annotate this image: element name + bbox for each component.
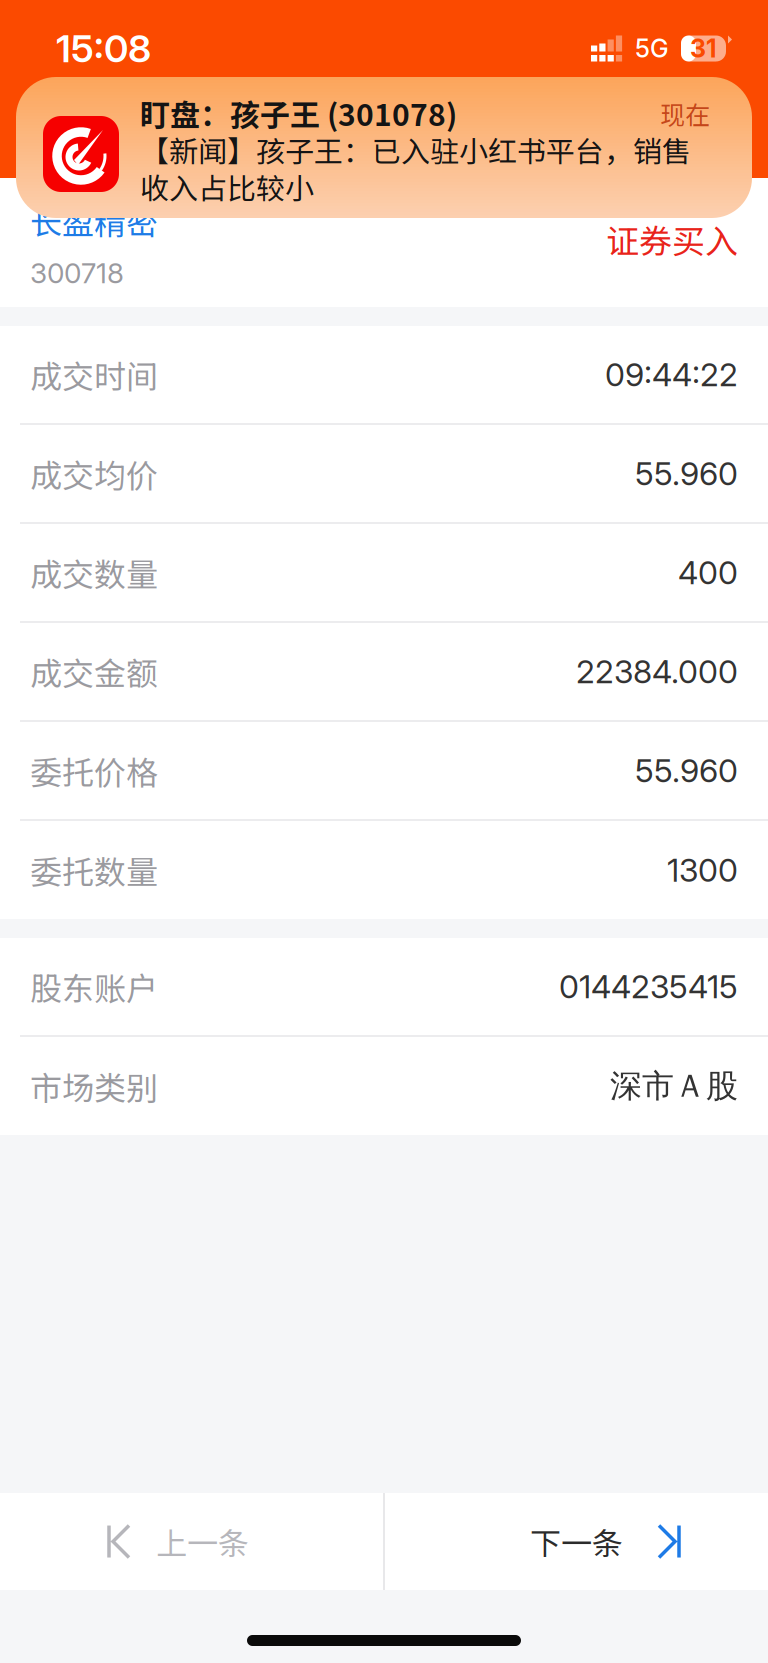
staticText: 盯盘：孩子王 (301078) [140, 91, 457, 135]
staticText: 股东账户 [30, 963, 158, 1010]
staticText: 现在 [660, 95, 710, 131]
staticText: 400 [678, 553, 738, 592]
staticText: 市场类别 [30, 1063, 158, 1109]
button[interactable]: 盯盘：孩子王 (301078) [16, 77, 752, 218]
staticText: 证券买入 [606, 215, 738, 263]
staticText: 1300 [667, 851, 738, 889]
staticText: 收入占比较小 [140, 165, 314, 207]
staticText: 5G [635, 33, 669, 64]
staticText: 31 [690, 33, 717, 64]
staticText: 成交金额 [30, 648, 158, 695]
staticText: 55.960 [635, 454, 738, 493]
staticText: 长盈精密 [30, 197, 158, 243]
staticText: 22384.000 [576, 652, 738, 691]
staticText: 委托价格 [30, 747, 158, 794]
staticText: 深市Ａ股 [610, 1066, 738, 1106]
staticText: 上一条 [156, 1519, 249, 1564]
staticText: 成交数量 [30, 549, 158, 596]
button[interactable]: 上一条 [0, 1493, 383, 1590]
staticText: 09:44:22 [605, 355, 738, 394]
staticText: 0144235415 [559, 967, 738, 1006]
staticText: 【新闻】孩子王：已入驻小红书平台，销售 [140, 128, 691, 170]
staticText: 成交时间 [30, 351, 158, 398]
staticText: 55.960 [635, 751, 738, 790]
staticText: 下一条 [530, 1519, 623, 1564]
staticText: 300718 [30, 256, 124, 290]
button[interactable]: 下一条 [385, 1493, 768, 1590]
staticText: 成交均价 [30, 450, 158, 497]
staticText: 委托数量 [30, 847, 158, 893]
staticText: 15:08 [56, 25, 151, 71]
